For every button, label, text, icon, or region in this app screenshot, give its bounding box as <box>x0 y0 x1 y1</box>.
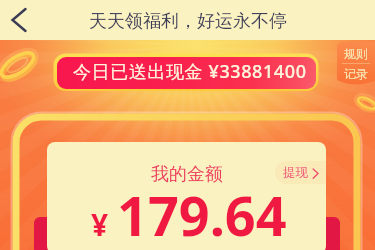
staticText: 规则 <box>344 46 368 61</box>
button[interactable]: 今日已送出现金 ¥33881400 <box>57 57 316 89</box>
staticText: 提现 <box>283 165 308 181</box>
staticText: 我的金额 <box>151 163 223 186</box>
button[interactable]: Rules and records <box>337 42 375 88</box>
staticText: ¥ <box>91 204 109 245</box>
staticText: 179.64 <box>117 178 287 250</box>
button[interactable]: Back <box>0 0 40 40</box>
staticText: 记录 <box>344 66 368 81</box>
staticText: 今日已送出现金 ¥33881400 <box>73 59 307 84</box>
button[interactable]: 提现 <box>275 161 326 184</box>
staticText: 天天领福利，好运永不停 <box>89 10 287 33</box>
